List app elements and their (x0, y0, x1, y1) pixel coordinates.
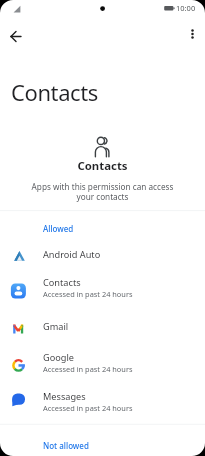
button[interactable] (6, 26, 27, 47)
staticText: Gmail (43, 320, 69, 333)
staticText: Accessed in past 24 hours (43, 403, 133, 413)
button[interactable]: Google (0, 347, 205, 384)
staticText: Messages (43, 390, 86, 403)
staticText: Contacts (43, 276, 81, 289)
staticText: 10:00 (176, 3, 196, 13)
button[interactable]: Android Auto (0, 237, 205, 274)
button[interactable]: Gmail (0, 310, 205, 347)
staticText: Google (43, 351, 75, 364)
button[interactable]: Messages (0, 383, 205, 420)
button[interactable]: Contacts (0, 274, 205, 311)
staticText: Accessed in past 24 hours (43, 364, 133, 374)
staticText: Allowed (43, 223, 74, 234)
staticText: Android Auto (43, 248, 101, 261)
staticText: Contacts (11, 77, 98, 107)
staticText: Accessed in past 24 hours (43, 289, 133, 299)
staticText: Not allowed (43, 440, 89, 451)
button[interactable] (184, 26, 201, 46)
staticText: Contacts (0, 158, 205, 174)
staticText: Apps with this permission can access you… (0, 181, 205, 202)
